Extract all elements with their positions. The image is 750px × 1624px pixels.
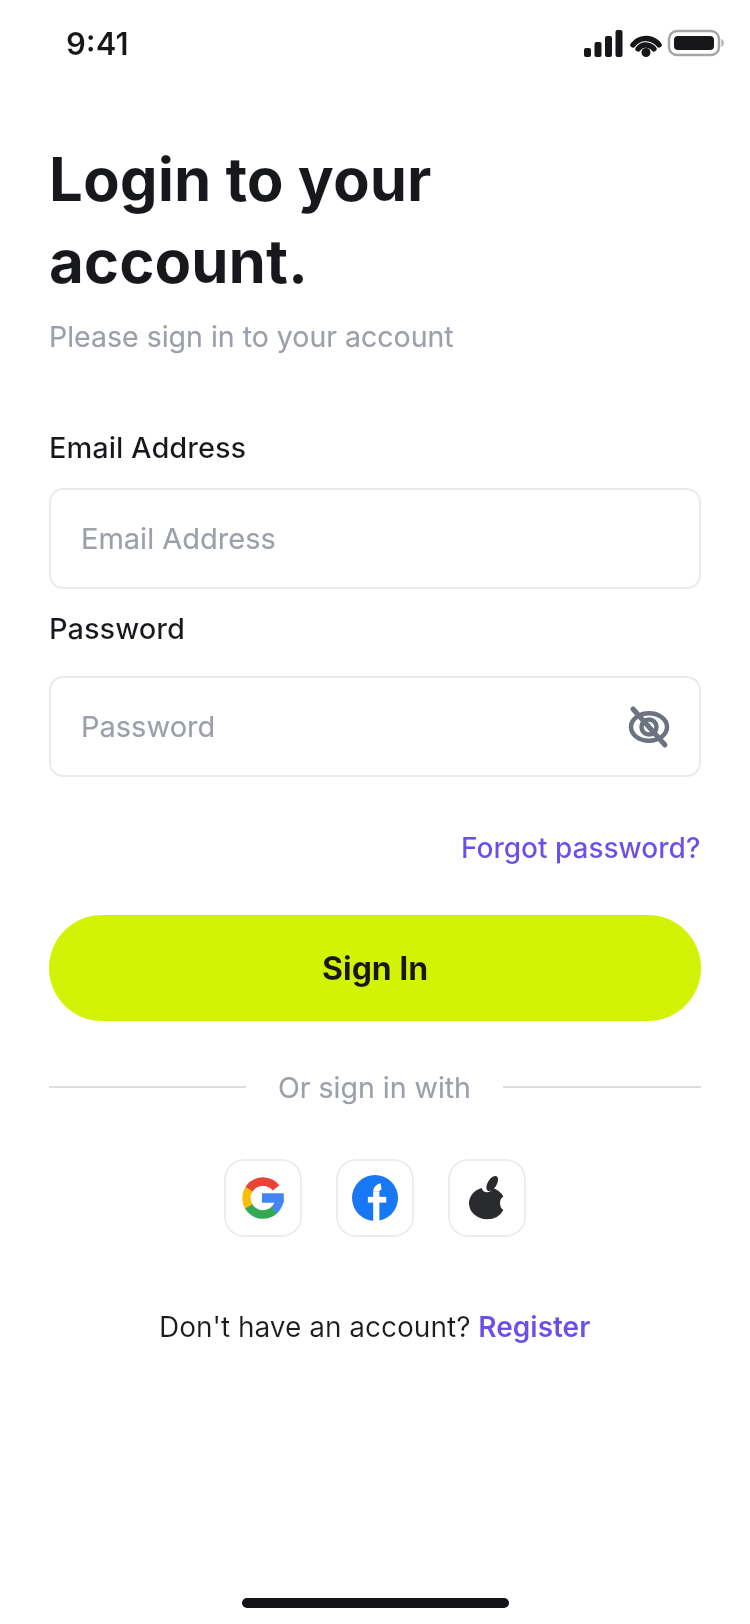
button[interactable] — [336, 1159, 414, 1237]
button[interactable] — [448, 1159, 526, 1237]
staticText: Forgot password? — [461, 831, 701, 865]
button[interactable]: Forgot password? — [461, 831, 701, 865]
staticText: Please sign in to your account — [49, 319, 454, 353]
staticText: Password — [49, 611, 185, 646]
button[interactable]: Don't have an account? Register — [49, 1310, 701, 1344]
staticText: Password — [81, 709, 216, 744]
button[interactable]: Password — [49, 676, 701, 777]
staticText: Email Address — [81, 521, 276, 556]
staticText: Don't have an account? Register — [159, 1310, 591, 1344]
button[interactable]: Sign In — [49, 915, 701, 1021]
staticText: Email Address — [49, 430, 247, 465]
staticText: Sign In — [322, 949, 429, 988]
button[interactable] — [224, 1159, 302, 1237]
button[interactable]: Email Address — [49, 488, 701, 589]
staticText: 9:41 — [66, 25, 129, 63]
staticText: Login to your account. — [49, 143, 432, 297]
staticText: Or sign in with — [278, 1070, 471, 1104]
